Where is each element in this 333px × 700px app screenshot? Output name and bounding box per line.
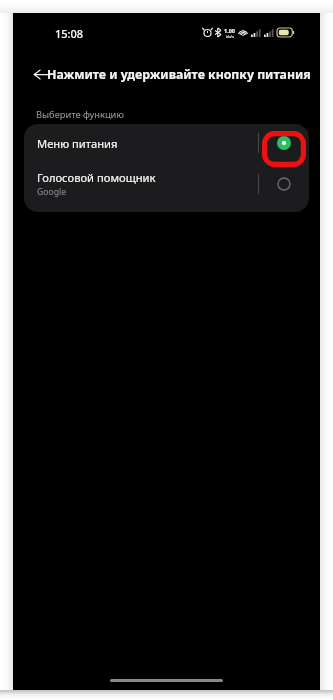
- button[interactable]: Не выбрано: [272, 172, 296, 196]
- button[interactable]: Меню питания: [24, 124, 309, 162]
- staticText: 15:08: [55, 26, 84, 41]
- staticText: Меню питания: [37, 136, 118, 151]
- staticText: Голосовой помощник: [37, 170, 156, 185]
- staticText: Google: [37, 186, 67, 198]
- button[interactable]: Голосовой помощник: [24, 162, 309, 206]
- button[interactable]: Выбрано: [272, 131, 296, 155]
- staticText: 1.00: [224, 27, 235, 34]
- staticText: Выберите функцию: [36, 108, 124, 121]
- button[interactable]: Назад: [27, 60, 55, 88]
- staticText: kb/s: [226, 34, 234, 39]
- staticText: Нажмите и удерживайте кнопку питания: [47, 66, 311, 83]
